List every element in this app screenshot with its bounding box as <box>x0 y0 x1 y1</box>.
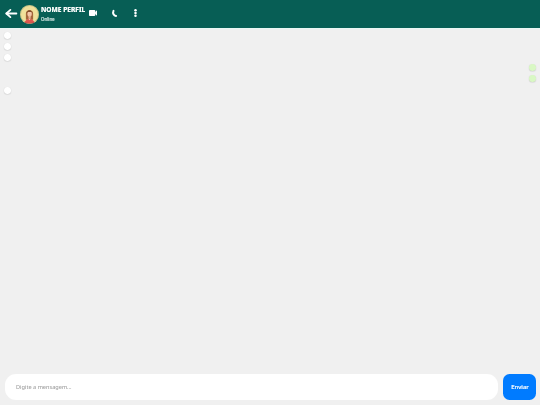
button[interactable]: Back <box>3 6 18 21</box>
button[interactable]: Message <box>529 75 536 82</box>
button[interactable]: Message <box>4 32 11 39</box>
staticText: NOME PERFIL <box>41 5 86 14</box>
staticText: Enviar <box>511 383 529 391</box>
staticText: Online <box>41 16 55 22</box>
button[interactable]: Digite a mensagem... <box>5 374 498 400</box>
button[interactable]: Message <box>4 87 11 94</box>
button[interactable]: Message <box>4 54 11 61</box>
button[interactable]: Message <box>4 43 11 50</box>
staticText: Digite a mensagem... <box>16 383 72 391</box>
button[interactable]: More options <box>128 7 142 21</box>
button[interactable]: Video call <box>86 7 100 21</box>
button[interactable]: Enviar <box>503 374 536 400</box>
button[interactable]: Message <box>529 64 536 71</box>
button[interactable]: Call <box>107 7 121 21</box>
